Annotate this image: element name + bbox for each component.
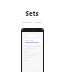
- button[interactable]: [25, 42, 39, 43]
- button[interactable]: [24, 55, 41, 56]
- button[interactable]: [24, 57, 41, 58]
- button[interactable]: [24, 48, 41, 49]
- staticText: Sets: [0, 10, 64, 18]
- staticText: organise · stacks: [0, 20, 64, 23]
